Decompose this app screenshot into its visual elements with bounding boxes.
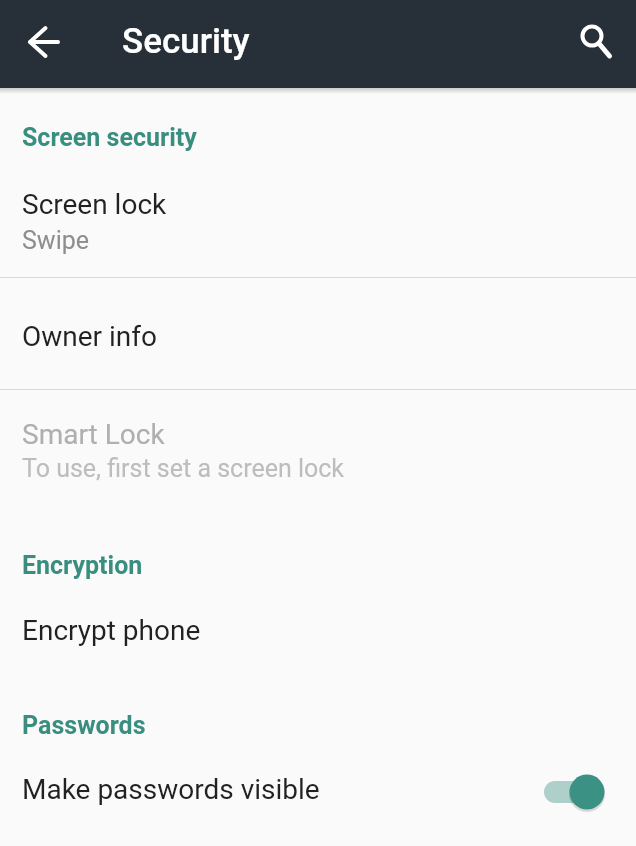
button[interactable]: Encrypt phone: [0, 595, 636, 665]
staticText: Swipe: [22, 226, 90, 255]
staticText: Passwords: [22, 711, 146, 740]
staticText: Screen lock: [22, 188, 167, 221]
staticText: Screen security: [22, 123, 197, 152]
button[interactable]: [566, 0, 636, 88]
button[interactable]: Make passwords visible: [0, 755, 636, 828]
button[interactable]: Owner info: [0, 278, 636, 389]
button[interactable]: Screen lock: [0, 164, 636, 277]
staticText: Security: [122, 21, 250, 62]
staticText: Owner info: [22, 320, 158, 353]
staticText: Make passwords visible: [22, 773, 320, 806]
staticText: To use, first set a screen lock: [22, 454, 345, 483]
staticText: Encryption: [22, 551, 143, 580]
staticText: Smart Lock: [22, 418, 165, 451]
button[interactable]: [0, 0, 88, 88]
staticText: Encrypt phone: [22, 614, 201, 647]
